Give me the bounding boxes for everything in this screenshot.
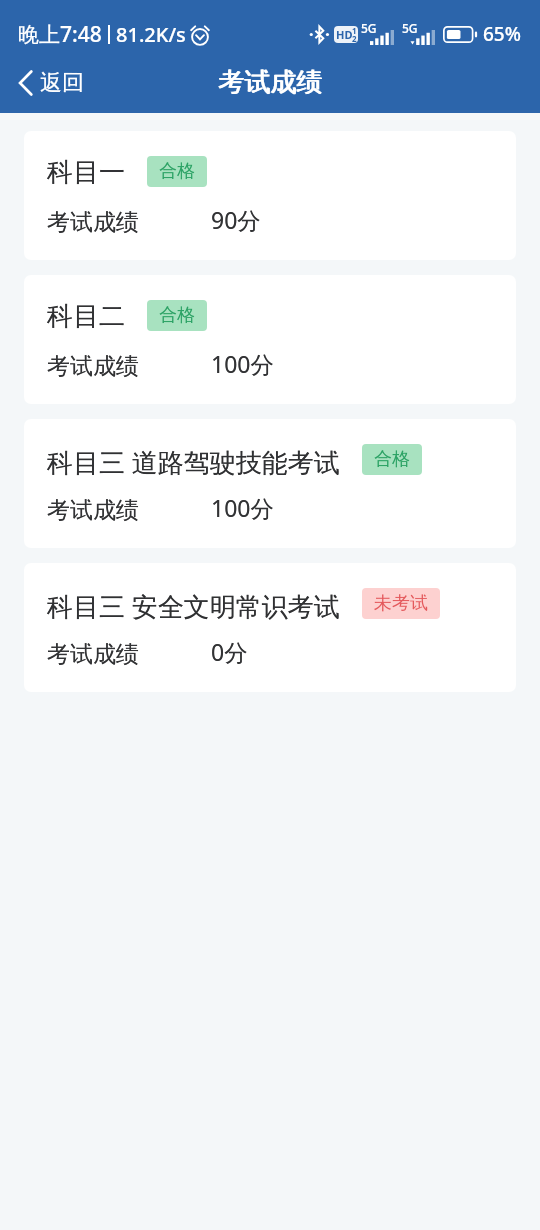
button[interactable]: 科目二 xyxy=(24,275,516,404)
staticText: 考试成绩 xyxy=(47,496,139,525)
staticText: 合格 xyxy=(159,160,195,183)
staticText: 100分 xyxy=(211,492,274,523)
staticText: 100分 xyxy=(211,492,274,523)
staticText: 科目三 安全文明常识考试 xyxy=(47,588,340,624)
staticText: 未考试 xyxy=(374,592,428,615)
staticText: 考试成绩 xyxy=(218,66,322,99)
staticText: 科目一 xyxy=(47,156,125,189)
staticText: 考试成绩 xyxy=(47,640,139,669)
staticText: 科目二 xyxy=(47,300,125,333)
staticText: 合格 xyxy=(159,304,195,327)
staticText: 考试成绩 xyxy=(47,352,139,381)
staticText: 科目三 道路驾驶技能考试 xyxy=(47,444,340,480)
staticText: 100分 xyxy=(211,348,274,379)
staticText: 考试成绩 xyxy=(219,66,323,99)
staticText: 考试成绩 xyxy=(47,496,139,525)
staticText: 0分 xyxy=(211,636,248,667)
staticText: 合格 xyxy=(374,448,410,471)
staticText: 5G xyxy=(402,20,418,36)
staticText: 科目一 xyxy=(47,156,125,189)
staticText: 科目二 xyxy=(47,300,125,333)
button[interactable]: 科目一 xyxy=(24,131,516,260)
other: Bluetooth xyxy=(310,25,328,44)
button[interactable]: 科目三 道路驾驶技能考试 xyxy=(24,419,516,548)
staticText: 5G xyxy=(361,20,377,36)
button[interactable]: Back xyxy=(0,59,100,107)
other: Battery 65 percent xyxy=(443,26,478,43)
staticText: 考试成绩 xyxy=(47,208,139,237)
staticText: 90分 xyxy=(211,204,261,235)
staticText: 65% xyxy=(483,21,521,47)
staticText: 2 xyxy=(352,33,357,43)
staticText: 考试成绩 xyxy=(47,208,139,237)
staticText: 1 xyxy=(352,26,357,36)
staticText: 90分 xyxy=(211,204,261,235)
button[interactable]: 科目三 安全文明常识考试 xyxy=(24,563,516,692)
staticText: 科目三 道路驾驶技能考试 xyxy=(47,444,340,480)
other: Alarm xyxy=(188,23,212,47)
staticText: 科目三 安全文明常识考试 xyxy=(47,588,340,624)
staticText: 晚上7:48 xyxy=(18,20,102,49)
staticText: 0分 xyxy=(211,636,248,667)
staticText: 81.2K/s xyxy=(116,21,186,48)
staticText: 考试成绩 xyxy=(47,352,139,381)
staticText: 考试成绩 xyxy=(47,640,139,669)
staticText: 100分 xyxy=(211,348,274,379)
other: Back xyxy=(19,71,32,95)
staticText: 返回 xyxy=(40,69,84,97)
staticText: HD xyxy=(336,27,353,42)
